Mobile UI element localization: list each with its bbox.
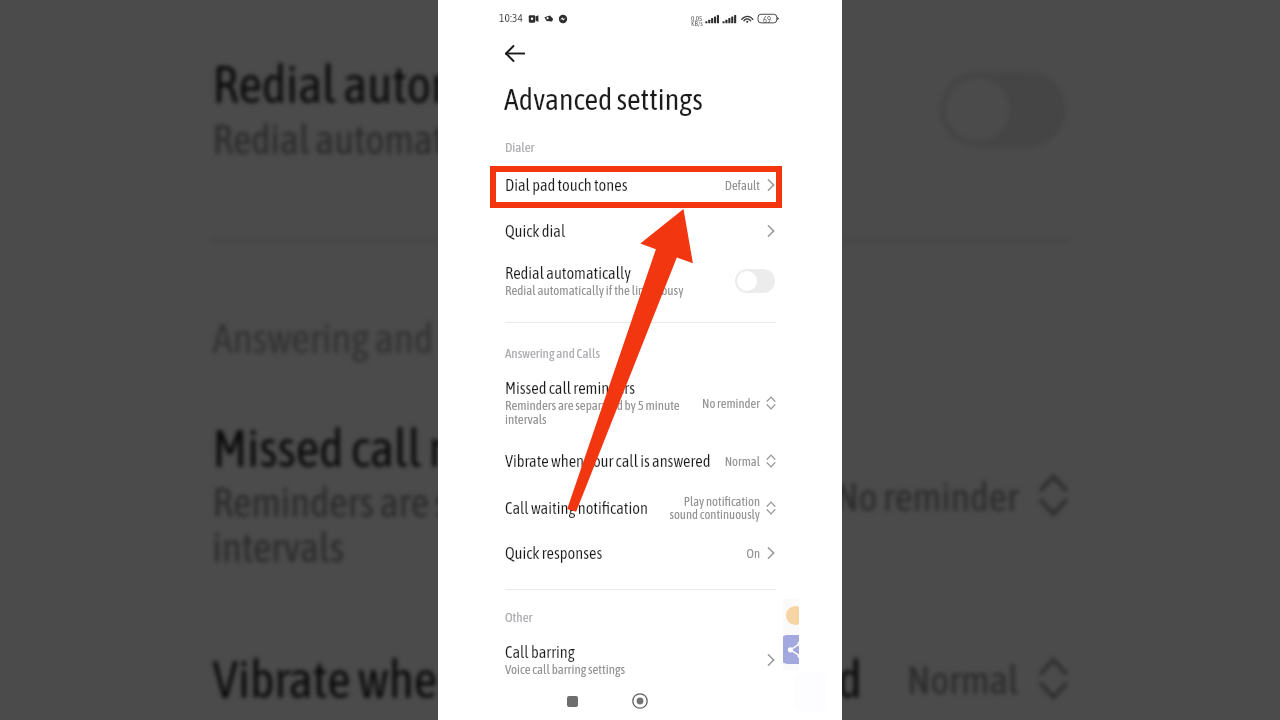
staticText: 69 xyxy=(763,15,771,25)
staticText: Call waiting notification xyxy=(505,499,648,518)
staticText: Redial automatically xyxy=(505,264,631,283)
button[interactable]: Vibrate when your call is answered xyxy=(1,622,1278,720)
button[interactable]: Redial automatically xyxy=(438,258,842,304)
button[interactable]: Recent apps xyxy=(563,692,581,710)
staticText: Voice call barring settings xyxy=(505,662,626,677)
button[interactable]: Missed call reminders xyxy=(438,377,842,429)
staticText: Answering and Calls xyxy=(505,346,600,361)
staticText: Dial pad touch tones xyxy=(505,176,628,195)
button[interactable]: Quick dial xyxy=(1,0,1278,15)
staticText: Vibrate when your call is answered xyxy=(213,650,864,710)
staticText: Redial automatically if the line is busy xyxy=(213,116,778,163)
staticText: 10:34 xyxy=(499,11,523,24)
staticText: Default xyxy=(724,178,760,192)
staticText: Call barring xyxy=(505,643,575,662)
staticText: Quick responses xyxy=(505,544,603,563)
staticText: Redial automatically xyxy=(213,56,611,116)
button[interactable]: Call barring xyxy=(438,637,842,683)
staticText: Normal xyxy=(905,656,1019,701)
button[interactable]: Quick responses xyxy=(438,535,842,571)
staticText: Quick dial xyxy=(505,222,566,241)
staticText: Advanced settings xyxy=(504,82,703,116)
staticText: Dialer xyxy=(505,140,535,155)
staticText: On xyxy=(746,546,760,560)
button[interactable]: Floating shortcuts xyxy=(783,599,799,670)
button[interactable]: Vibrate when your call is answered xyxy=(438,443,842,479)
staticText: Missed call reminders xyxy=(213,419,623,479)
button[interactable]: Toggle redial automatically xyxy=(735,269,775,293)
staticText: Other xyxy=(505,610,533,625)
staticText: No reminder xyxy=(835,473,1019,517)
staticText: Reminders are separated by 5 minute inte… xyxy=(505,398,680,427)
staticText: 0.05 KB/s xyxy=(691,14,703,28)
staticText: Normal xyxy=(724,454,760,468)
staticText: No reminder xyxy=(702,396,760,410)
staticText: Answering and Calls xyxy=(213,315,513,362)
button[interactable]: Quick dial xyxy=(438,211,842,251)
staticText: Missed call reminders xyxy=(505,379,635,398)
button[interactable]: Redial automatically xyxy=(1,37,1278,182)
button[interactable]: Dial pad touch tones xyxy=(438,164,842,206)
staticText: Play notification sound continuously xyxy=(669,494,760,522)
button[interactable]: Home xyxy=(630,691,650,711)
button[interactable]: Missed call reminders xyxy=(1,413,1278,577)
staticText: Vibrate when your call is answered xyxy=(505,452,711,471)
staticText: Reminders are separated by 5 minute inte… xyxy=(213,479,766,571)
staticText: Redial automatically if the line is busy xyxy=(505,283,684,298)
button[interactable]: Call waiting notification xyxy=(438,488,842,528)
button[interactable]: Back xyxy=(500,38,531,69)
